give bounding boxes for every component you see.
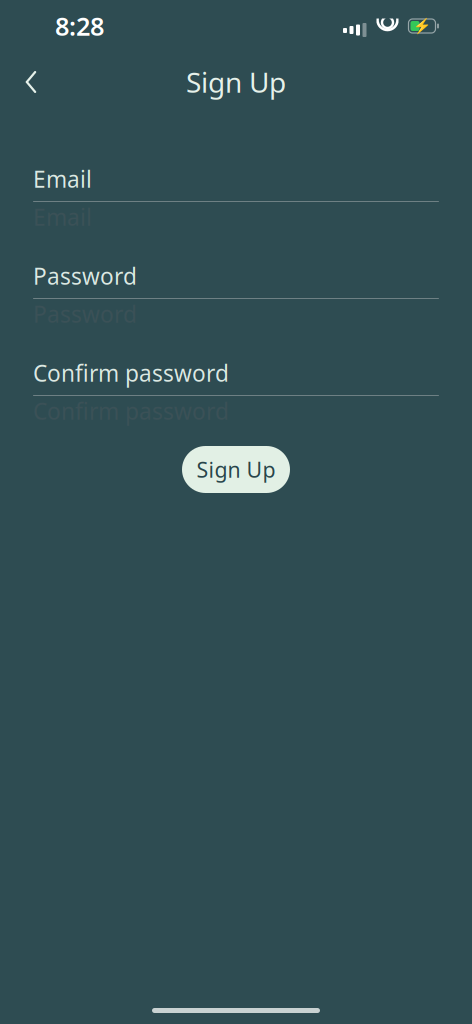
staticText: Sign Up xyxy=(186,63,286,101)
button[interactable]: Back xyxy=(9,60,53,104)
staticText: 8:28 xyxy=(55,9,104,43)
staticText: Confirm password xyxy=(33,396,229,426)
staticText: Email xyxy=(33,202,92,232)
button[interactable]: Sign Up xyxy=(182,446,290,493)
staticText: Sign Up xyxy=(196,455,275,484)
staticText: Password xyxy=(33,261,137,291)
staticText: Password xyxy=(33,299,137,329)
staticText: Email xyxy=(33,164,92,194)
staticText: ⚡ xyxy=(413,18,431,34)
staticText: Confirm password xyxy=(33,358,229,388)
